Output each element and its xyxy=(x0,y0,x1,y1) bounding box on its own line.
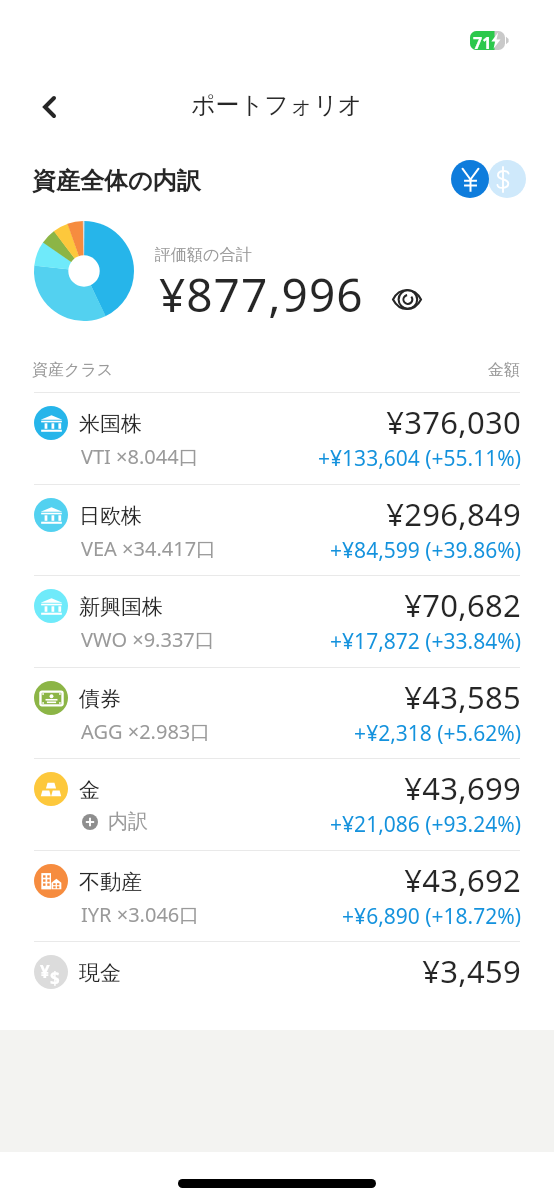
button[interactable]: Currency toggle xyxy=(451,159,526,198)
staticText: +¥17,872 (+33.84%) xyxy=(0,627,521,656)
staticText: ¥43,692 xyxy=(0,859,521,901)
staticText: 評価額の合計 xyxy=(155,245,252,265)
button[interactable]: 不動産 xyxy=(0,850,554,942)
staticText: 米国株 xyxy=(79,411,142,437)
staticText: ¥70,682 xyxy=(0,584,521,626)
staticText: ¥43,585 xyxy=(0,676,521,718)
staticText: 日欧株 xyxy=(79,503,142,529)
button[interactable]: Toggle visibility xyxy=(383,275,431,323)
staticText: 現金 xyxy=(79,960,121,986)
staticText: ¥376,030 xyxy=(0,401,521,443)
staticText: 資産全体の内訳 xyxy=(32,166,201,196)
staticText: VWO ×9.337口 xyxy=(81,626,215,653)
staticText: 金額 xyxy=(0,360,520,380)
button[interactable]: 日欧株 xyxy=(0,484,554,576)
button[interactable]: 米国株 xyxy=(0,392,554,484)
button[interactable]: 金 xyxy=(0,758,554,850)
staticText: $ xyxy=(50,967,60,989)
staticText: ¥877,996 xyxy=(159,263,364,326)
staticText: +¥21,086 (+93.24%) xyxy=(0,810,521,839)
staticText: 内訳 xyxy=(108,809,148,834)
button[interactable]: Back xyxy=(25,82,74,131)
button[interactable]: 債券 xyxy=(0,667,554,759)
staticText: ポートフォリオ xyxy=(191,90,363,120)
staticText: +¥6,890 (+18.72%) xyxy=(0,902,521,931)
staticText: +¥84,599 (+39.86%) xyxy=(0,536,521,565)
staticText: 債券 xyxy=(79,686,121,712)
staticText: VEA ×34.417口 xyxy=(81,535,217,562)
staticText: 新興国株 xyxy=(79,594,163,620)
button[interactable]: ¥ xyxy=(0,941,554,1033)
staticText: +¥133,604 (+55.11%) xyxy=(0,444,521,473)
staticText: ¥43,699 xyxy=(0,767,521,809)
staticText: AGG ×2.983口 xyxy=(81,718,211,745)
staticText: ¥ xyxy=(40,960,50,983)
staticText: VTI ×8.044口 xyxy=(81,443,199,470)
staticText: 資産クラス xyxy=(32,360,114,380)
staticText: ¥3,459 xyxy=(0,950,521,992)
button[interactable]: 新興国株 xyxy=(0,575,554,667)
staticText: +¥2,318 (+5.62%) xyxy=(0,719,521,748)
staticText: ¥296,849 xyxy=(0,493,521,535)
staticText: 71 xyxy=(473,32,492,51)
staticText: 不動産 xyxy=(79,869,142,895)
staticText: IYR ×3.046口 xyxy=(81,901,200,928)
staticText: 金 xyxy=(79,777,100,803)
